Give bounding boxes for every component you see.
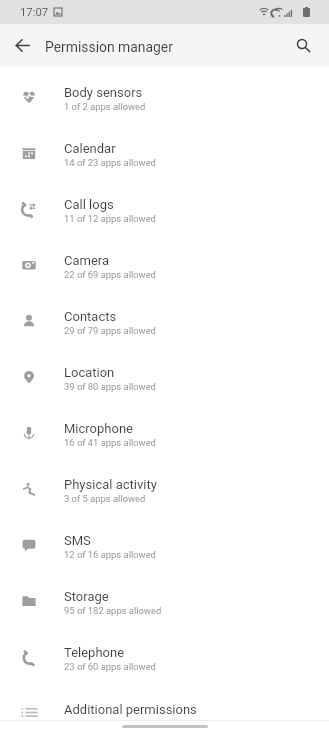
button[interactable]: Calendar	[0, 125, 329, 181]
staticText: 22 of 69 apps allowed	[64, 269, 156, 280]
button[interactable]: Contacts	[0, 293, 329, 349]
button[interactable]: Call logs	[0, 181, 329, 237]
staticText: Storage	[64, 589, 109, 604]
staticText: Telephone	[64, 645, 125, 660]
button[interactable]: Camera	[0, 237, 329, 293]
button[interactable]: Search	[291, 33, 316, 58]
staticText: 14 of 23 apps allowed	[64, 157, 156, 168]
staticText: 11 of 12 apps allowed	[64, 213, 156, 224]
staticText: 39 of 80 apps allowed	[64, 381, 156, 392]
staticText: SMS	[64, 533, 91, 548]
staticText: Location	[64, 365, 115, 380]
button[interactable]: Telephone	[0, 629, 329, 685]
button[interactable]: Body sensors	[0, 69, 329, 125]
staticText: Contacts	[64, 309, 117, 324]
staticText: 16 of 41 apps allowed	[64, 437, 156, 448]
button[interactable]: Microphone	[0, 405, 329, 461]
button[interactable]: Back	[10, 33, 35, 58]
staticText: Additional permissions	[64, 702, 197, 717]
staticText: Body sensors	[64, 85, 143, 100]
button[interactable]: SMS	[0, 517, 329, 573]
staticText: Calendar	[64, 141, 116, 156]
staticText: Physical activity	[64, 477, 157, 492]
staticText: 23 of 60 apps allowed	[64, 661, 156, 672]
staticText: 95 of 182 apps allowed	[64, 605, 162, 616]
button[interactable]: Storage	[0, 573, 329, 629]
staticText: Camera	[64, 253, 110, 268]
staticText: Permission manager	[45, 39, 173, 55]
staticText: 1 of 2 apps allowed	[64, 101, 146, 112]
staticText: Call logs	[64, 197, 114, 212]
button[interactable]: Additional permissions	[0, 685, 329, 731]
staticText: 12 of 16 apps allowed	[64, 549, 156, 560]
staticText: 17:07	[20, 6, 49, 19]
staticText: 29 of 79 apps allowed	[64, 325, 156, 336]
button[interactable]: Physical activity	[0, 461, 329, 517]
staticText: Microphone	[64, 421, 133, 436]
button[interactable]: Location	[0, 349, 329, 405]
staticText: 3 of 5 apps allowed	[64, 493, 146, 504]
